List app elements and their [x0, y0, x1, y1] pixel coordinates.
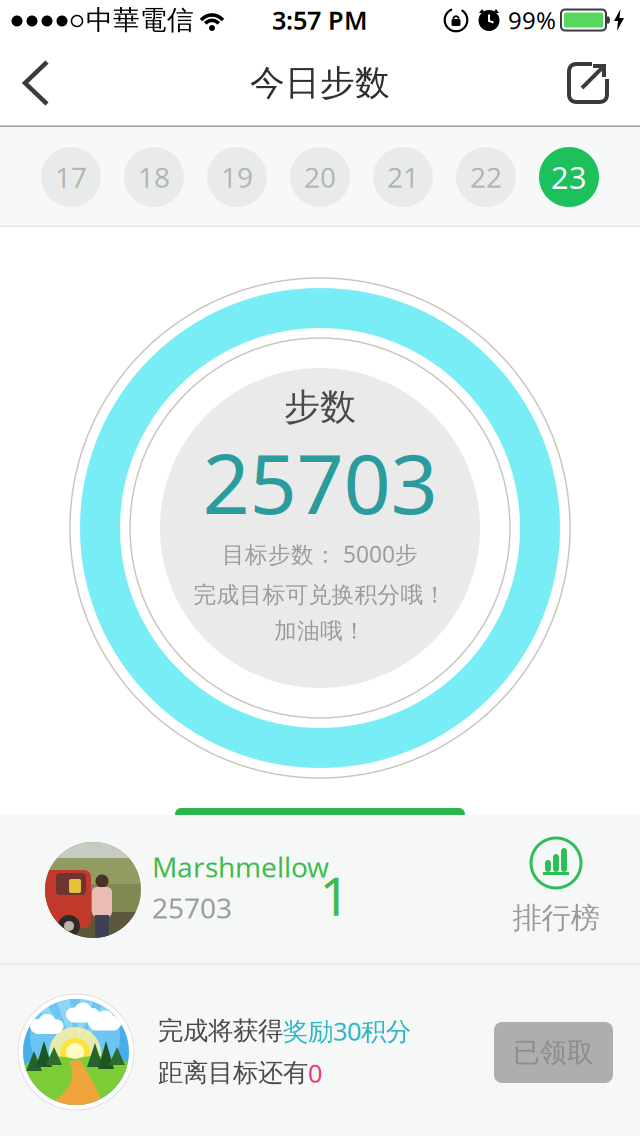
staticText: 1 — [319, 860, 350, 930]
staticText: 今日步数 — [250, 62, 390, 104]
staticText: 20 — [304, 158, 336, 196]
button[interactable]: 22 — [456, 147, 516, 207]
staticText: 中華電信 — [86, 4, 194, 36]
button[interactable]: 17 — [41, 147, 101, 207]
button[interactable]: 19 — [207, 147, 267, 207]
button[interactable]: 排行榜 — [512, 838, 599, 936]
button[interactable]: 18 — [124, 147, 184, 207]
staticText: 加油哦！ — [274, 617, 366, 645]
staticText: 3:57 PM — [272, 3, 368, 37]
button[interactable]: Back — [12, 53, 60, 113]
staticText: 19 — [221, 158, 253, 196]
staticText: 完成目标可兑换积分哦！ — [193, 581, 446, 609]
staticText: 21 — [387, 158, 419, 196]
button[interactable]: 21 — [373, 147, 433, 207]
button[interactable]: Share — [566, 61, 610, 105]
staticText: 0 — [308, 1056, 322, 1090]
staticText: 排行榜 — [512, 900, 599, 936]
staticText: 25703 — [152, 889, 232, 926]
staticText: 步数 — [284, 385, 356, 429]
button[interactable]: 23 — [539, 147, 599, 207]
button[interactable]: Marshmellow — [45, 842, 141, 938]
button[interactable]: 已领取 — [494, 1022, 613, 1083]
staticText: 已领取 — [513, 1036, 594, 1069]
staticText: 18 — [138, 158, 170, 196]
staticText: 目标步数： 5000步 — [222, 539, 418, 569]
staticText: 完成将获得 — [158, 1015, 283, 1046]
staticText: 22 — [470, 158, 502, 196]
staticText: 99% — [508, 4, 556, 36]
staticText: 25703 — [202, 427, 437, 537]
staticText: Marshmellow — [152, 848, 329, 885]
button[interactable]: 兑换 — [175, 808, 465, 815]
staticText: 奖励30积分 — [283, 1014, 411, 1048]
staticText: 距离目标还有 — [158, 1057, 308, 1088]
staticText: 23 — [551, 157, 587, 197]
staticText: 17 — [55, 158, 87, 196]
button[interactable]: 20 — [290, 147, 350, 207]
